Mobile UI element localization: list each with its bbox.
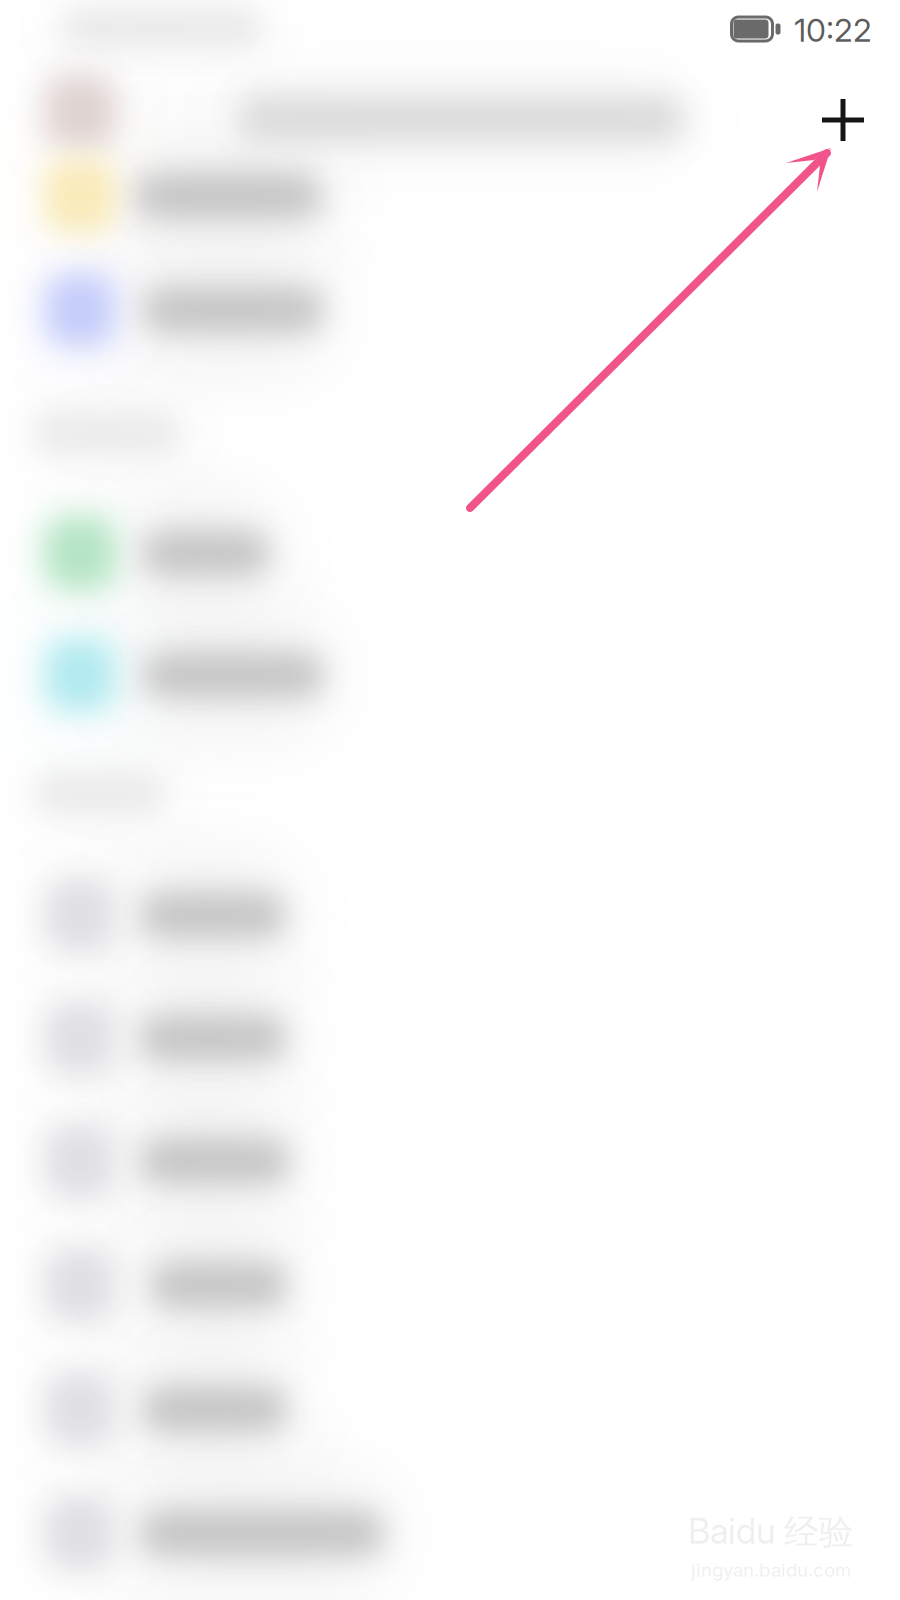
- button[interactable]: Setting 4: [0, 1224, 900, 1346]
- button[interactable]: Folder 1: [0, 492, 900, 614]
- button[interactable]: Setting 6: [0, 1472, 900, 1594]
- staticText: jingyan.baidu.com: [691, 1559, 851, 1581]
- button[interactable]: Add: [795, 72, 891, 168]
- button[interactable]: Setting 3: [0, 1100, 900, 1222]
- button[interactable]: Setting 5: [0, 1348, 900, 1470]
- button[interactable]: Setting 1: [0, 854, 900, 976]
- button[interactable]: Setting 2: [0, 977, 900, 1099]
- button[interactable]: Mail account: [0, 135, 900, 257]
- button[interactable]: Drafts: [0, 249, 900, 371]
- staticText: 10:22: [794, 11, 872, 49]
- staticText: Baidu 经验: [688, 1510, 854, 1554]
- button[interactable]: Folder 2: [0, 614, 900, 736]
